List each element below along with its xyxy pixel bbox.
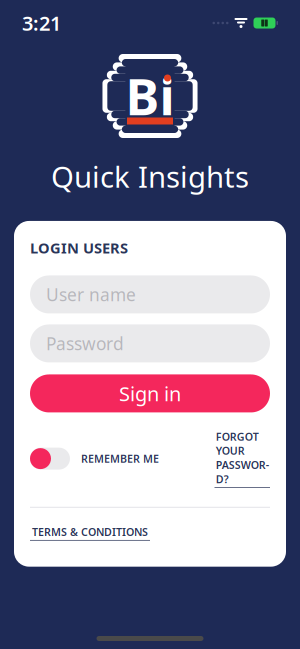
button[interactable]: FORGOT YOUR PASSWORD?: [214, 429, 270, 488]
staticText: Password: [46, 332, 124, 355]
staticText: Sign in: [119, 380, 181, 407]
staticText: User name: [46, 283, 136, 306]
staticText: REMEMBER ME: [81, 451, 159, 466]
staticText: FORGOT YOUR PASSWORD?: [216, 429, 269, 486]
button[interactable]: TERMS & CONDITIONS: [30, 525, 150, 541]
staticText: TERMS & CONDITIONS: [32, 525, 148, 539]
button[interactable]: Sign in: [30, 374, 270, 412]
staticText: Quick Insights: [51, 157, 249, 196]
staticText: LOGIN USERS: [30, 238, 128, 257]
staticText: Bi: [125, 62, 174, 129]
button[interactable]: Remember me toggle: [30, 448, 70, 470]
staticText: 3:21: [22, 10, 61, 36]
